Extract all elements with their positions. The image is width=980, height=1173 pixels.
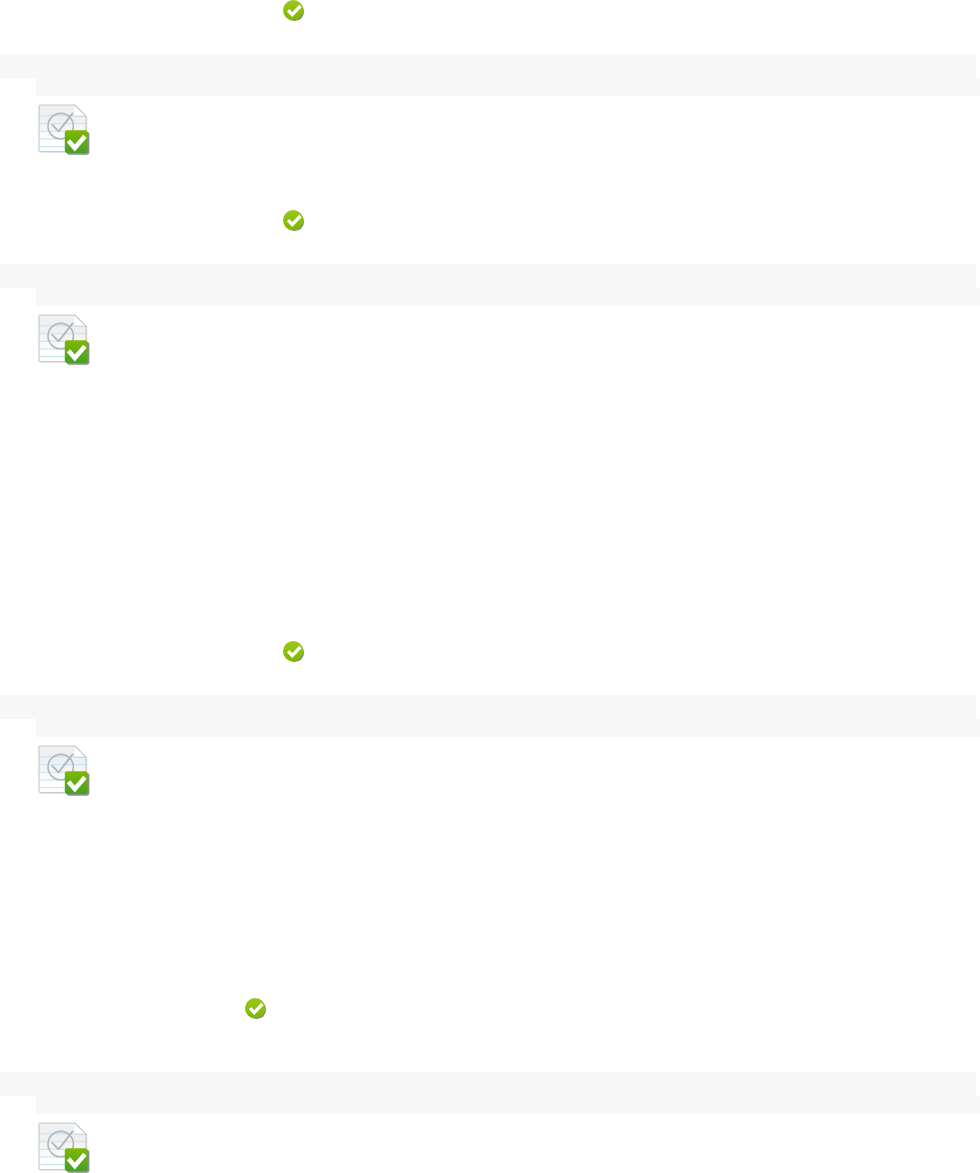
button[interactable]: Completed bbox=[283, 641, 305, 663]
button[interactable]: Completed bbox=[245, 998, 267, 1020]
button[interactable]: Completed checklist bbox=[0, 1123, 980, 1173]
button[interactable]: Completed bbox=[283, 210, 305, 232]
button[interactable]: Completed checklist bbox=[0, 105, 980, 264]
button[interactable]: Completed bbox=[283, 0, 305, 22]
button[interactable]: Completed checklist bbox=[0, 746, 980, 1072]
button[interactable]: Completed checklist bbox=[0, 315, 980, 695]
